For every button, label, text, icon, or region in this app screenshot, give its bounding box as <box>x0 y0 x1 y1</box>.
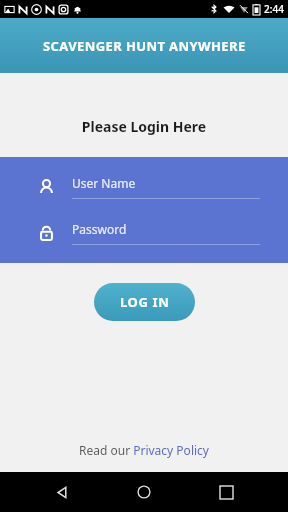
staticText: Read our Privacy Policy <box>79 442 209 458</box>
staticText: SCAVENGER HUNT ANYWHERE <box>43 37 246 55</box>
staticText: Please Login Here <box>0 117 288 136</box>
button[interactable]: Read our Privacy Policy <box>71 439 217 461</box>
button[interactable]: Password <box>38 221 260 245</box>
staticText: 2:44 <box>264 2 284 16</box>
button[interactable]: LOG IN <box>94 283 195 321</box>
button[interactable]: User Name <box>38 175 260 199</box>
staticText: User Name <box>72 175 136 191</box>
button[interactable]: Back <box>42 472 82 512</box>
button[interactable]: Home <box>124 472 164 512</box>
button[interactable]: Recent apps <box>206 472 246 512</box>
staticText: Password <box>72 221 127 237</box>
staticText: LOG IN <box>120 293 170 311</box>
